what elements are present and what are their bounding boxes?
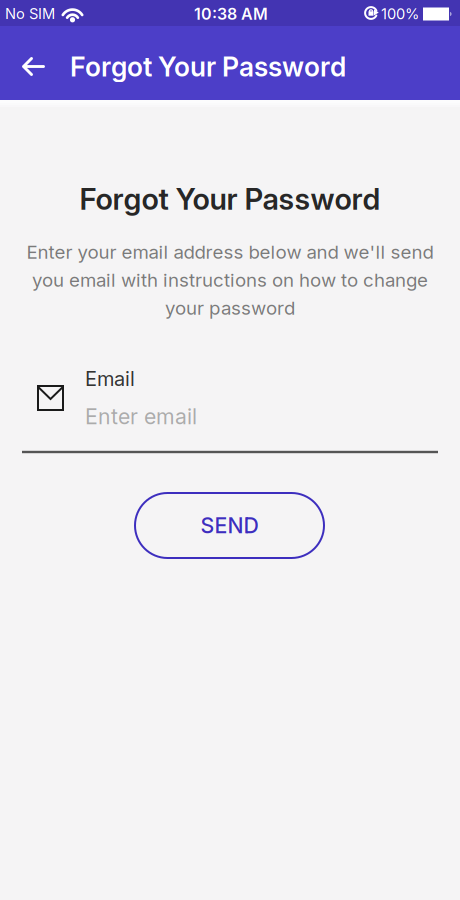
staticText: Forgot Your Password bbox=[79, 182, 380, 216]
staticText: SEND bbox=[200, 513, 258, 538]
staticText: No SIM bbox=[5, 5, 55, 22]
staticText: Forgot Your Password bbox=[70, 51, 346, 82]
staticText: 10:38 AM bbox=[194, 5, 268, 23]
button[interactable]: Enter email bbox=[22, 365, 438, 455]
staticText: 100% bbox=[381, 5, 419, 23]
button[interactable]: Back bbox=[10, 43, 56, 89]
staticText: you email with instructions on how to ch… bbox=[32, 269, 428, 291]
staticText: Enter email bbox=[85, 404, 197, 429]
staticText: your password bbox=[165, 297, 295, 319]
button[interactable]: SEND bbox=[135, 493, 324, 558]
staticText: Enter your email address below and we'll… bbox=[26, 241, 433, 263]
staticText: Email bbox=[85, 367, 135, 391]
